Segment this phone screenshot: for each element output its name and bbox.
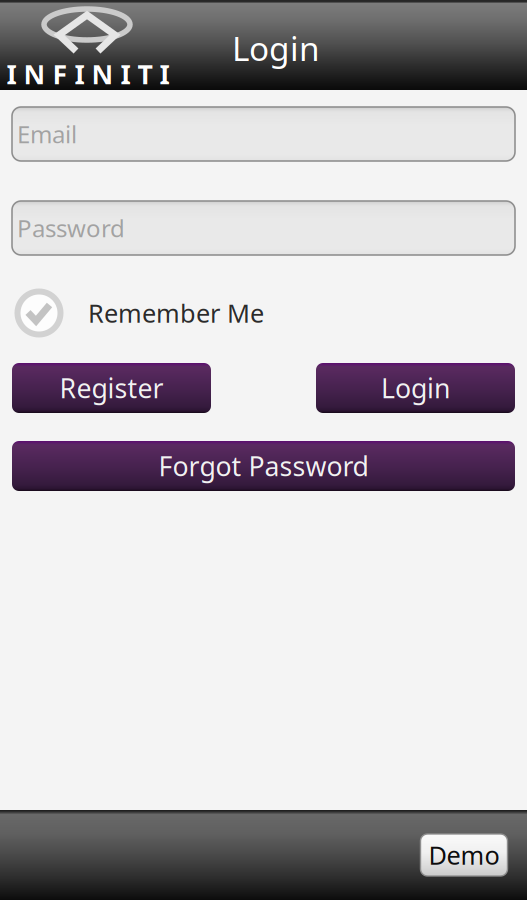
staticText: Login <box>232 26 320 70</box>
button[interactable]: Password <box>12 201 515 255</box>
staticText: Register <box>59 370 163 406</box>
staticText: Login <box>381 370 450 406</box>
button[interactable]: Email <box>12 107 515 161</box>
staticText: Forgot Password <box>158 448 368 484</box>
button[interactable]: Forgot Password <box>12 441 515 491</box>
staticText: I N F I N I T I <box>6 56 169 92</box>
staticText: Password <box>17 212 125 244</box>
staticText: Demo <box>428 838 499 872</box>
button[interactable]: Remember Me <box>12 255 515 338</box>
staticText: Remember Me <box>88 296 264 330</box>
button[interactable]: Login <box>316 363 515 413</box>
button[interactable]: Demo <box>420 834 507 876</box>
staticText: Email <box>17 118 77 150</box>
button[interactable]: Register <box>12 363 211 413</box>
